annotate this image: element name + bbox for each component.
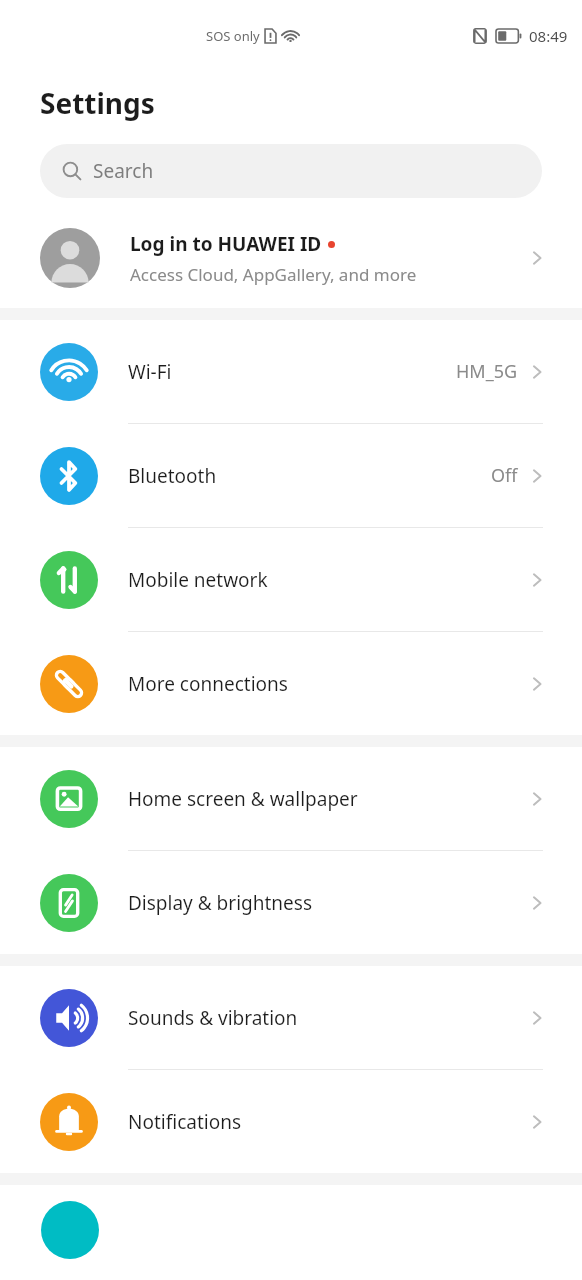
button[interactable]: Wi-Fi	[0, 320, 582, 424]
staticText: Wi-Fi	[128, 359, 456, 385]
staticText: Sounds & vibration	[128, 1005, 526, 1031]
staticText: Home screen & wallpaper	[128, 786, 526, 812]
button[interactable]: Mobile network	[0, 528, 582, 632]
staticText: HM_5G	[456, 359, 518, 384]
staticText: More connections	[128, 671, 526, 697]
button[interactable]: Notifications	[0, 1070, 582, 1173]
staticText: Notifications	[128, 1109, 526, 1135]
button[interactable]: Search	[40, 144, 542, 198]
button[interactable]: Bluetooth	[0, 424, 582, 528]
staticText: Access Cloud, AppGallery, and more	[130, 263, 417, 286]
button[interactable]: Home screen & wallpaper	[0, 747, 582, 851]
staticText: Settings	[40, 84, 155, 122]
staticText: Search	[93, 158, 154, 184]
staticText: 08:49	[529, 26, 568, 46]
button[interactable]: Log in to HUAWEI ID	[0, 208, 582, 308]
staticText: Bluetooth	[128, 463, 491, 489]
button[interactable]: More connections	[0, 632, 582, 735]
staticText: Display & brightness	[128, 890, 526, 916]
staticText: Off	[491, 463, 518, 488]
staticText: Mobile network	[128, 567, 526, 593]
button[interactable]: Display & brightness	[0, 851, 582, 954]
staticText: SOS only	[206, 27, 260, 45]
staticText: Log in to HUAWEI ID	[130, 231, 322, 257]
button[interactable]: Sounds & vibration	[0, 966, 582, 1070]
